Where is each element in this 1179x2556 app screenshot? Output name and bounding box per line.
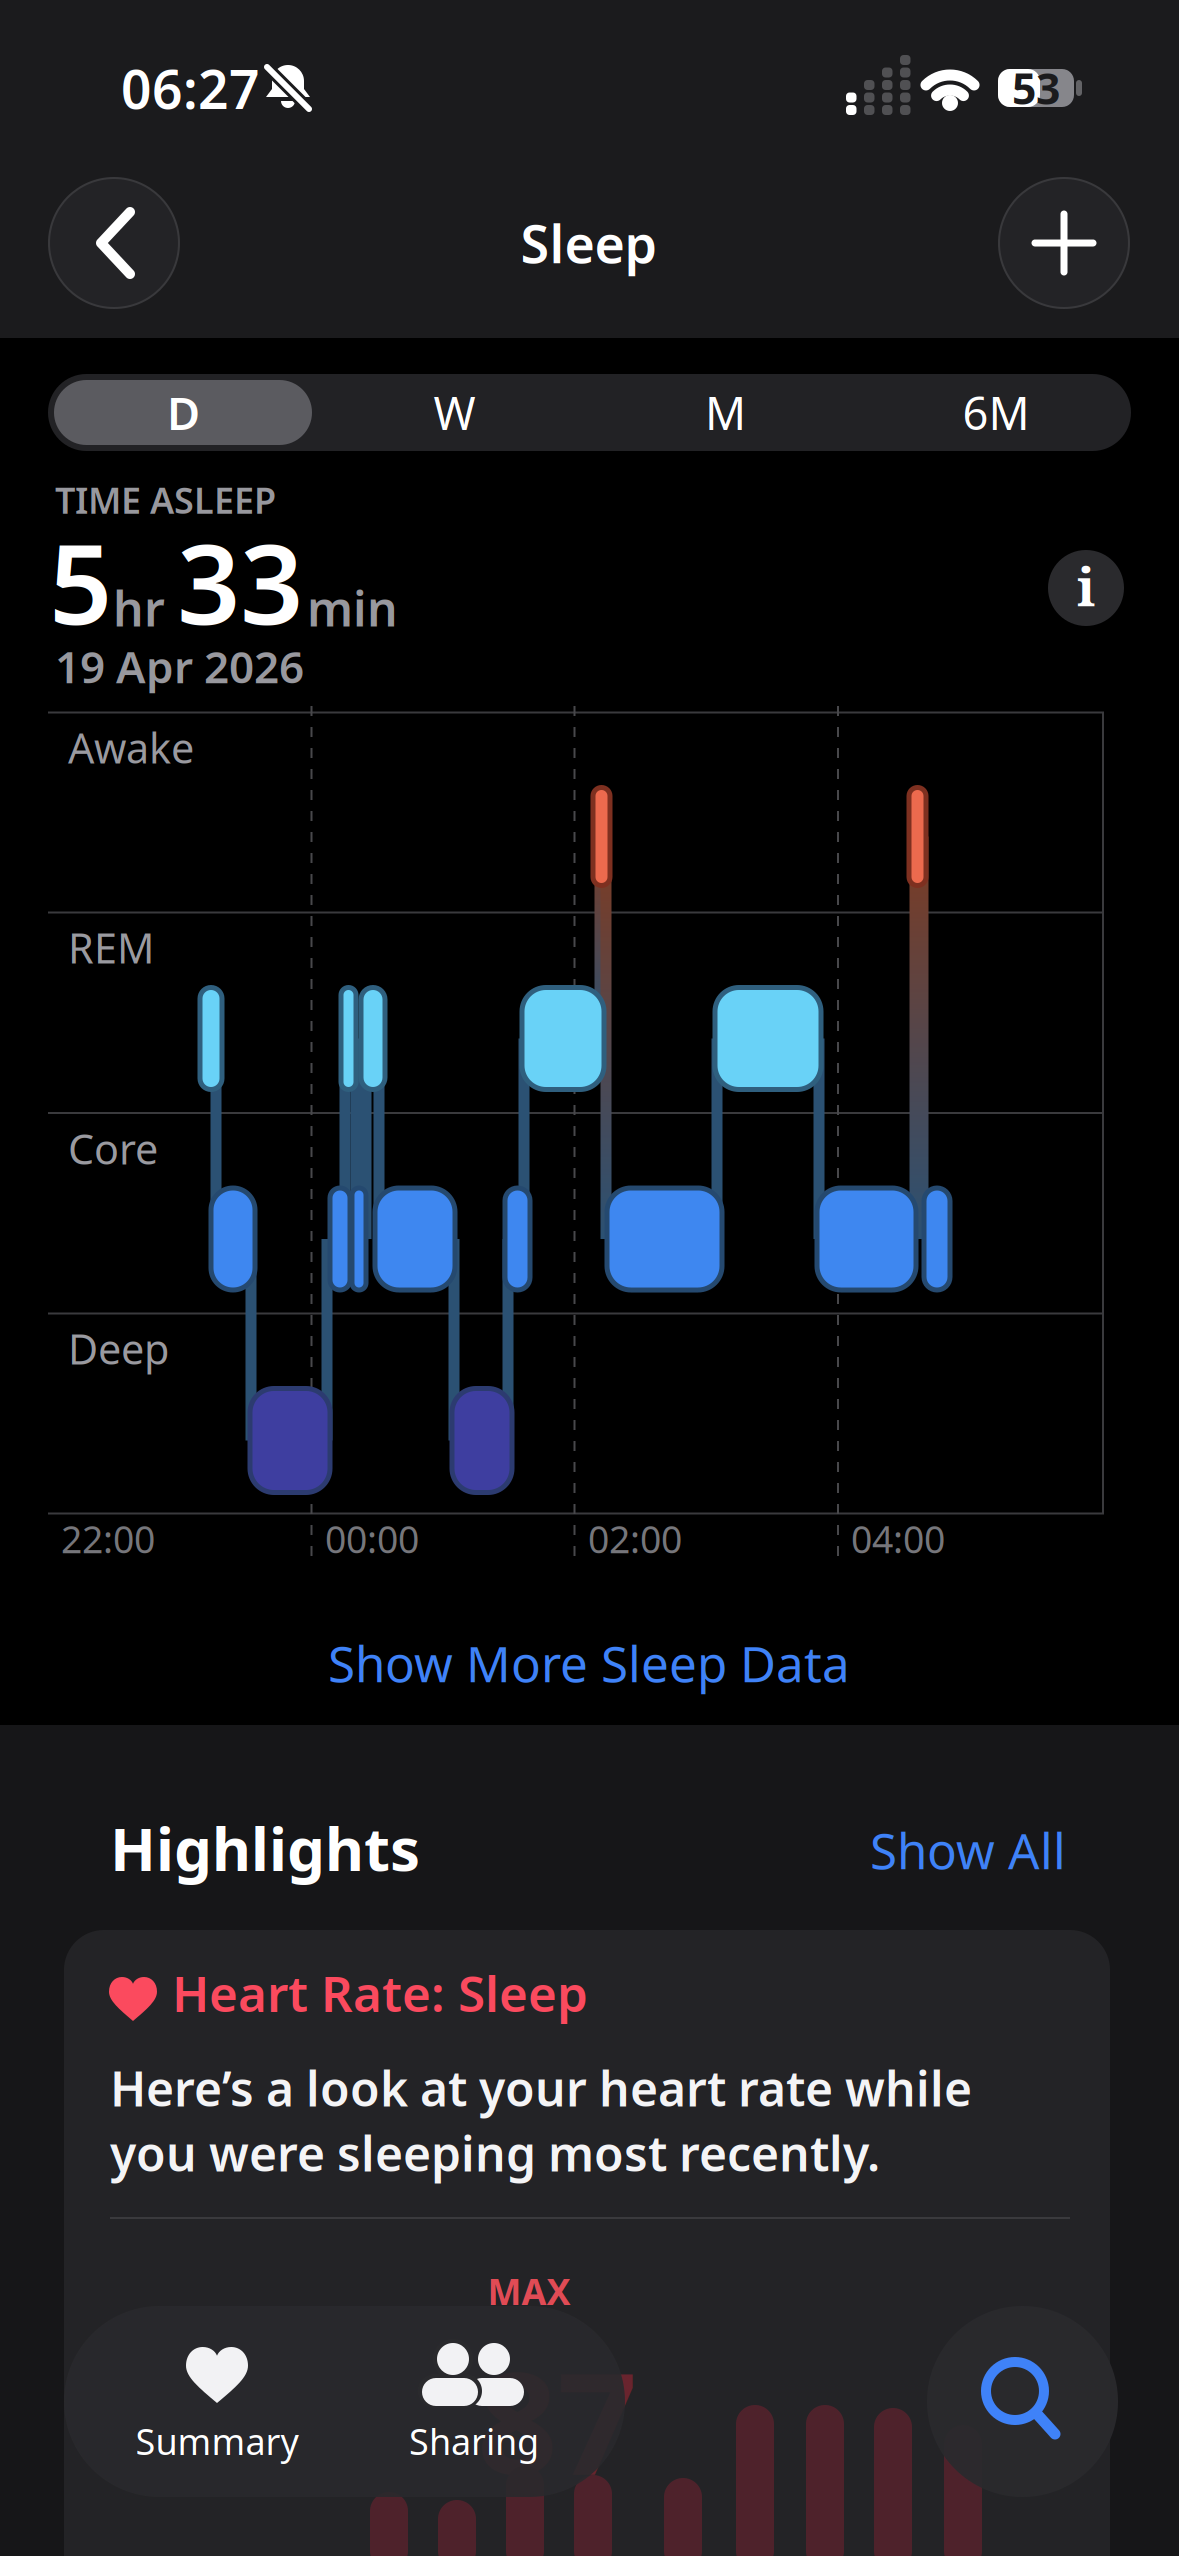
staticText: Sleep bbox=[520, 208, 657, 278]
button[interactable] bbox=[0, 0, 1179, 2556]
button[interactable]: Summary bbox=[0, 0, 1179, 2556]
staticText: Summary bbox=[135, 2417, 298, 2465]
staticText: D bbox=[167, 382, 200, 443]
staticText: hr bbox=[113, 576, 165, 640]
staticText: 33 bbox=[177, 508, 303, 655]
staticText: min bbox=[307, 576, 398, 640]
staticText: Awake bbox=[68, 720, 194, 775]
staticText: 87 bbox=[477, 2327, 637, 2513]
staticText: MAX bbox=[487, 2267, 570, 2315]
staticText: REM bbox=[68, 920, 154, 975]
staticText: 19 Apr 2026 bbox=[55, 637, 304, 695]
staticText: Here’s a look at your heart rate while bbox=[110, 2056, 972, 2120]
staticText: i bbox=[1077, 551, 1095, 621]
staticText: 00:00 bbox=[325, 1514, 419, 1564]
button[interactable]: Heart Rate: Sleep bbox=[0, 0, 1179, 2556]
button[interactable]: M bbox=[0, 0, 271, 77]
staticText: M bbox=[705, 382, 746, 443]
button[interactable]: W bbox=[0, 0, 271, 77]
button[interactable] bbox=[0, 0, 1179, 2556]
staticText: TIME ASLEEP bbox=[55, 476, 276, 524]
button[interactable]: Show More Sleep Data bbox=[0, 0, 900, 70]
staticText: 04:00 bbox=[851, 1514, 945, 1564]
staticText: Core bbox=[68, 1121, 158, 1176]
staticText: 02:00 bbox=[588, 1514, 682, 1564]
staticText: Heart Rate: Sleep bbox=[172, 1960, 588, 2025]
staticText: Show All bbox=[870, 1817, 1066, 1883]
staticText: 5 bbox=[49, 508, 112, 655]
staticText: Sharing bbox=[409, 2417, 539, 2465]
button[interactable]: D bbox=[0, 0, 271, 77]
staticText: 22:00 bbox=[61, 1514, 155, 1564]
staticText: you were sleeping most recently. bbox=[110, 2121, 880, 2185]
button[interactable] bbox=[0, 0, 1179, 2556]
staticText: 53 bbox=[1012, 60, 1060, 116]
staticText: Highlights bbox=[110, 1808, 420, 1888]
button[interactable]: 6M bbox=[0, 0, 270, 77]
staticText: 06:27 bbox=[121, 53, 260, 124]
button[interactable]: Sharing bbox=[0, 0, 1179, 2556]
staticText: Deep bbox=[68, 1321, 169, 1376]
staticText: Show More Sleep Data bbox=[328, 1630, 850, 1696]
staticText: W bbox=[433, 382, 475, 443]
staticText: 6M bbox=[962, 382, 1029, 443]
